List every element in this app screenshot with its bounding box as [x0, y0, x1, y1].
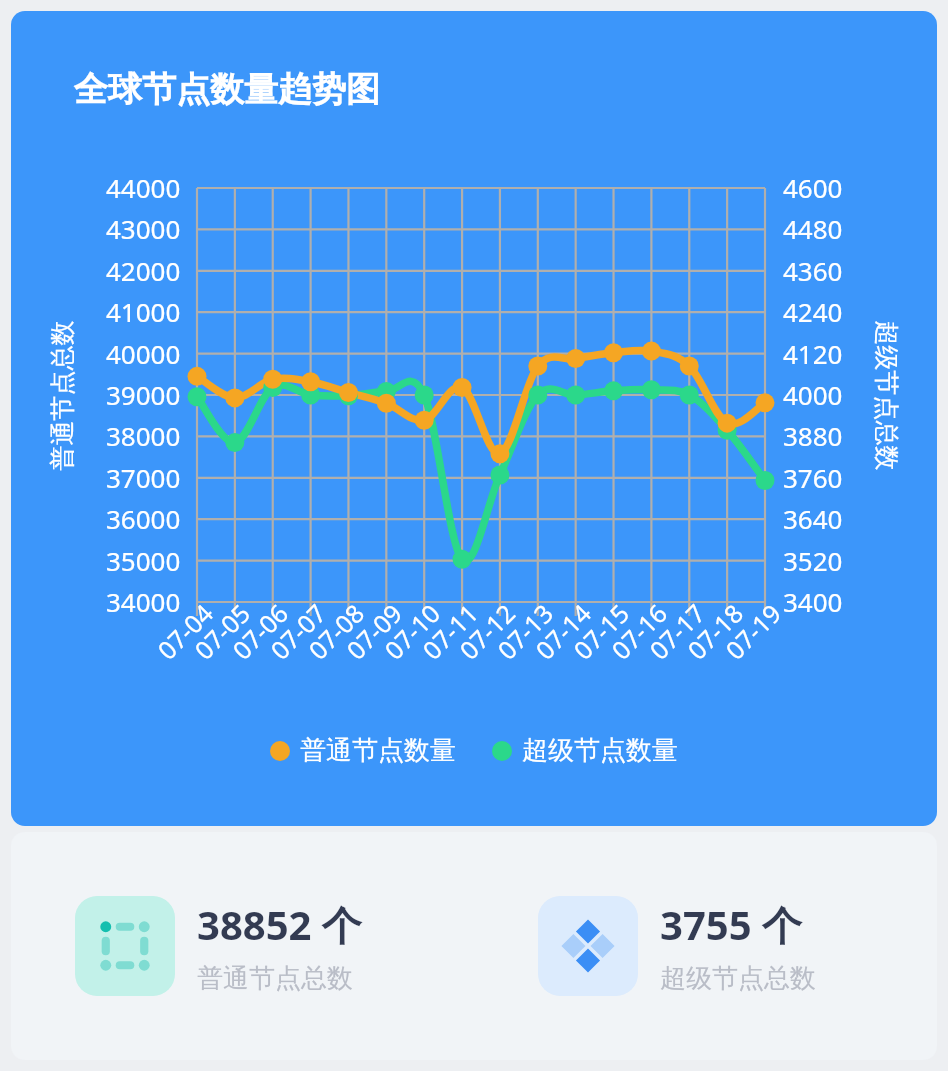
staticText: 4360: [783, 253, 843, 288]
staticText: 07-10: [377, 596, 447, 666]
button[interactable]: 普通节点: [11, 832, 474, 1060]
staticText: 35000: [106, 543, 181, 578]
staticText: 07-13: [490, 596, 560, 666]
button[interactable]: [11, 11, 937, 826]
staticText: 普通节点数量: [300, 734, 456, 767]
staticText: 07-12: [452, 596, 522, 666]
staticText: 37000: [106, 460, 181, 495]
button[interactable]: 普通节点数量: [266, 728, 460, 773]
staticText: 07-09: [339, 596, 409, 666]
button[interactable]: 超级节点: [474, 832, 937, 1060]
staticText: 07-18: [680, 596, 750, 666]
staticText: 3755 个: [660, 897, 802, 952]
staticText: 3520: [783, 543, 843, 578]
staticText: 43000: [106, 211, 181, 246]
staticText: 超级节点总数: [870, 320, 901, 470]
staticText: 38852 个: [197, 897, 362, 952]
staticText: 07-06: [225, 596, 295, 666]
staticText: 42000: [106, 253, 181, 288]
staticText: 07-15: [566, 596, 636, 666]
staticText: 40000: [106, 336, 181, 371]
staticText: 普通节点总数: [46, 320, 77, 470]
staticText: 4120: [783, 336, 843, 371]
staticText: 4600: [783, 170, 843, 205]
other: 普通节点: [75, 896, 175, 996]
staticText: 07-11: [415, 596, 485, 666]
staticText: 38000: [106, 418, 181, 453]
staticText: 3880: [783, 418, 843, 453]
staticText: 07-14: [528, 596, 598, 666]
staticText: 34000: [106, 584, 181, 619]
staticText: 4240: [783, 294, 843, 329]
button[interactable]: 超级节点数量: [488, 728, 682, 773]
staticText: 4000: [783, 377, 843, 412]
staticText: 07-08: [301, 596, 371, 666]
other: 超级节点: [538, 896, 638, 996]
staticText: 07-05: [187, 596, 257, 666]
staticText: 39000: [106, 377, 181, 412]
staticText: 3400: [783, 584, 843, 619]
staticText: 44000: [106, 170, 181, 205]
staticText: 普通节点总数: [197, 962, 353, 995]
staticText: 4480: [783, 211, 843, 246]
staticText: 07-16: [604, 596, 674, 666]
staticText: 超级节点数量: [522, 734, 678, 767]
staticText: 超级节点总数: [660, 962, 816, 995]
staticText: 41000: [106, 294, 181, 329]
staticText: 3640: [783, 501, 843, 536]
staticText: 36000: [106, 501, 181, 536]
staticText: 07-07: [263, 596, 333, 666]
staticText: 07-19: [718, 596, 788, 666]
staticText: 07-04: [150, 596, 220, 666]
staticText: 07-17: [642, 596, 712, 666]
staticText: 全球节点数量趋势图: [74, 68, 380, 111]
staticText: 3760: [783, 460, 843, 495]
